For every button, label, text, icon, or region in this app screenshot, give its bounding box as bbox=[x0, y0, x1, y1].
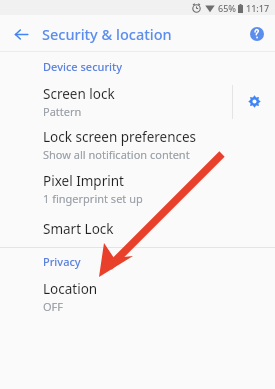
staticText: Security & location bbox=[42, 24, 172, 44]
staticText: OFF bbox=[43, 299, 64, 314]
staticText: Location bbox=[43, 280, 98, 298]
staticText: Screen lock bbox=[43, 85, 115, 103]
staticText: Privacy bbox=[43, 254, 81, 269]
button[interactable]: Screen lock bbox=[0, 80, 275, 123]
button[interactable]: Smart Lock bbox=[0, 211, 275, 247]
staticText: Lock screen preferences bbox=[43, 128, 197, 146]
staticText: Smart Lock bbox=[43, 220, 114, 238]
staticText: 65% bbox=[218, 2, 236, 14]
button[interactable]: Back bbox=[8, 21, 34, 47]
button[interactable]: Pixel Imprint bbox=[0, 167, 275, 211]
button[interactable]: Location bbox=[0, 275, 275, 319]
staticText: 11:17 bbox=[246, 2, 270, 14]
staticText: Pattern bbox=[43, 104, 82, 119]
staticText: 1 fingerprint set up bbox=[43, 191, 143, 206]
button[interactable]: Help bbox=[245, 22, 269, 46]
staticText: Pixel Imprint bbox=[43, 172, 124, 190]
button[interactable]: Lock screen preferences bbox=[0, 123, 275, 167]
staticText: Show all notification content bbox=[43, 147, 190, 162]
button[interactable]: Screen lock settings bbox=[233, 80, 275, 123]
staticText: Device security bbox=[43, 59, 123, 74]
